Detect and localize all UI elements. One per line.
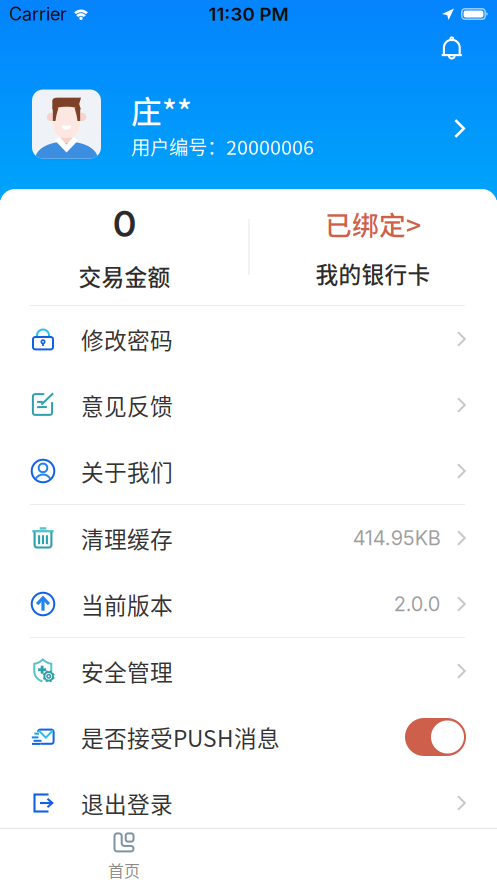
staticText: 交易金额 (78, 259, 170, 292)
button[interactable]: 0 (0, 189, 248, 305)
button[interactable]: 关于我们 (0, 438, 497, 504)
staticText: 414.95KB (353, 526, 441, 550)
button[interactable]: 首页 (62, 829, 186, 883)
staticText: 0 (113, 202, 136, 245)
staticText: 我的银行卡 (315, 257, 430, 290)
button[interactable]: 庄** (0, 84, 497, 164)
staticText: 庄** (131, 88, 192, 132)
button[interactable]: 清理缓存 (0, 505, 497, 571)
staticText: 11:30 PM (208, 3, 288, 25)
staticText: 当前版本 (81, 588, 173, 620)
button[interactable]: 安全管理 (0, 638, 497, 704)
button[interactable]: 退出登录 (0, 770, 497, 836)
staticText: 是否接受PUSH消息 (81, 721, 280, 753)
button[interactable]: 意见反馈 (0, 372, 497, 438)
staticText: 安全管理 (81, 655, 173, 687)
button[interactable]: 已绑定> (249, 189, 496, 305)
staticText: 修改密码 (81, 323, 173, 355)
staticText: 意见反馈 (81, 389, 173, 421)
button[interactable]: 是否接受PUSH消息 (0, 704, 497, 770)
staticText: 2.0.0 (394, 592, 441, 616)
staticText: Carrier (9, 3, 67, 25)
staticText: 清理缓存 (81, 522, 173, 554)
staticText: 退出登录 (81, 787, 173, 819)
staticText: 已绑定> (325, 204, 421, 243)
staticText: 首页 (108, 858, 140, 882)
button[interactable]: Notifications (428, 28, 476, 68)
staticText: 用户编号：20000006 (131, 132, 314, 160)
staticText: 关于我们 (81, 455, 173, 487)
button[interactable]: 当前版本 (0, 571, 497, 637)
button[interactable]: 修改密码 (0, 306, 497, 372)
